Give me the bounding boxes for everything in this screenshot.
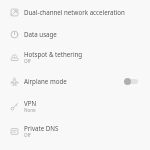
staticText: VPN [24, 99, 37, 107]
button[interactable]: Data usage [0, 23, 150, 45]
button[interactable]: VPN [0, 93, 150, 118]
button[interactable]: Dual-channel network acceleration [0, 0, 150, 23]
button[interactable]: Private DNS [0, 118, 150, 143]
staticText: Dual-channel network acceleration [24, 8, 125, 16]
button[interactable]: Hotspot & tethering [0, 45, 150, 69]
staticText: Data usage [24, 30, 57, 38]
button[interactable]: Airplane mode [0, 69, 150, 93]
staticText: Off [24, 132, 31, 138]
staticText: Private DNS [24, 124, 59, 132]
staticText: Airplane mode [24, 77, 67, 85]
staticText: None [24, 107, 36, 113]
staticText: Off [24, 58, 31, 64]
staticText: Hotspot & tethering [24, 50, 83, 58]
button[interactable]: Airplane mode toggle [124, 76, 140, 86]
